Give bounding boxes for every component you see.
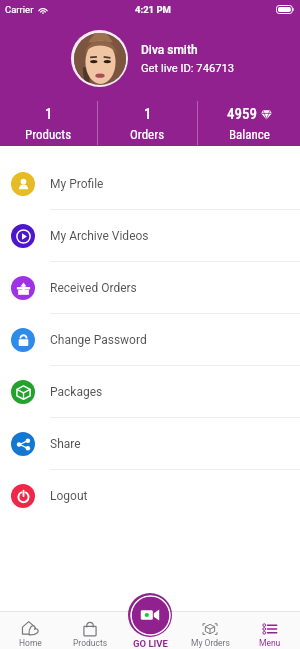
staticText: Logout xyxy=(50,489,88,503)
button[interactable]: Products xyxy=(60,613,120,648)
staticText: 4959 xyxy=(227,105,257,123)
button[interactable]: Change Password xyxy=(0,314,300,365)
button[interactable]: 1 xyxy=(0,105,97,142)
button[interactable]: My Archive Videos xyxy=(0,210,300,261)
staticText: Change Password xyxy=(50,333,147,347)
button[interactable]: Received Orders xyxy=(0,262,300,313)
staticText: My Profile xyxy=(50,177,104,191)
button[interactable]: My Profile xyxy=(0,158,300,209)
button[interactable]: Logout xyxy=(0,470,300,521)
staticText: Get live ID: 746713 xyxy=(141,62,235,75)
staticText: Home xyxy=(19,638,42,648)
staticText: Products xyxy=(73,638,108,648)
button[interactable]: Home xyxy=(0,613,60,648)
button[interactable]: 1 xyxy=(98,105,197,142)
staticText: Received Orders xyxy=(50,281,137,295)
staticText: Menu xyxy=(259,638,281,648)
staticText: 4:21 PM xyxy=(135,4,171,15)
staticText: Balance xyxy=(229,127,270,142)
staticText: My Orders xyxy=(191,638,230,648)
staticText: Orders xyxy=(130,127,165,142)
staticText: My Archive Videos xyxy=(50,229,149,243)
button[interactable]: 4959 xyxy=(198,105,300,142)
staticText: Packages xyxy=(50,385,103,399)
staticText: Products xyxy=(25,127,72,142)
button[interactable]: Go live xyxy=(128,593,172,649)
staticText: GO LIVE xyxy=(133,638,168,649)
staticText: Carrier xyxy=(5,4,34,15)
staticText: 1 xyxy=(144,105,152,123)
button[interactable]: Menu xyxy=(240,613,300,648)
staticText: Share xyxy=(50,437,81,451)
button[interactable]: Share xyxy=(0,418,300,469)
button[interactable]: Packages xyxy=(0,366,300,417)
staticText: Diva smith xyxy=(141,43,198,57)
staticText: 1 xyxy=(45,105,53,123)
button[interactable]: My Orders xyxy=(180,613,240,648)
